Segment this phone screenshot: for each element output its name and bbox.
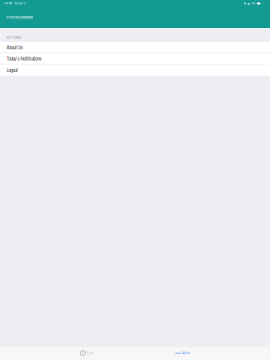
- staticText: About Us: [6, 44, 22, 50]
- staticText: Today's Notifications: [6, 55, 41, 62]
- staticText: eTechSchoolBus: [6, 15, 33, 19]
- button[interactable]: List: [78, 346, 95, 360]
- staticText: Logout: [6, 67, 17, 73]
- staticText: More: [182, 351, 190, 355]
- staticText: Thu May 23: [14, 2, 25, 5]
- button[interactable]: More: [173, 346, 192, 360]
- button[interactable]: Logout: [0, 64, 270, 76]
- button[interactable]: About Us: [0, 42, 270, 53]
- button[interactable]: Today's Notifications: [0, 53, 270, 64]
- staticText: 4:31 PM: [4, 2, 12, 5]
- staticText: 96%: [252, 2, 256, 5]
- staticText: List: [87, 351, 93, 355]
- staticText: SETTINGS: [6, 36, 21, 40]
